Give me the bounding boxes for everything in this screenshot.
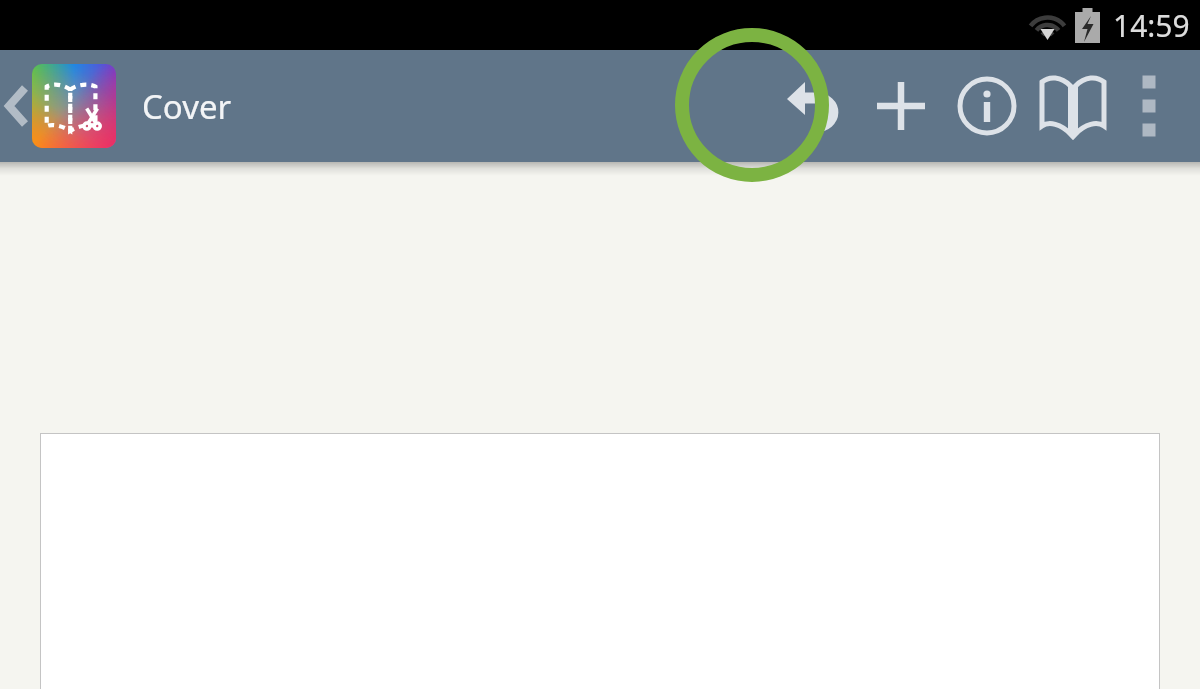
button[interactable]: Read book (1030, 50, 1116, 162)
button[interactable]: More options (1116, 50, 1182, 162)
button[interactable]: Add (858, 50, 944, 162)
button[interactable]: Info (944, 50, 1030, 162)
button[interactable]: Undo (772, 50, 858, 162)
staticText: Cover (142, 84, 232, 129)
staticText: 14:59 (1113, 5, 1190, 46)
button[interactable]: Navigate up, Cover (0, 50, 232, 162)
